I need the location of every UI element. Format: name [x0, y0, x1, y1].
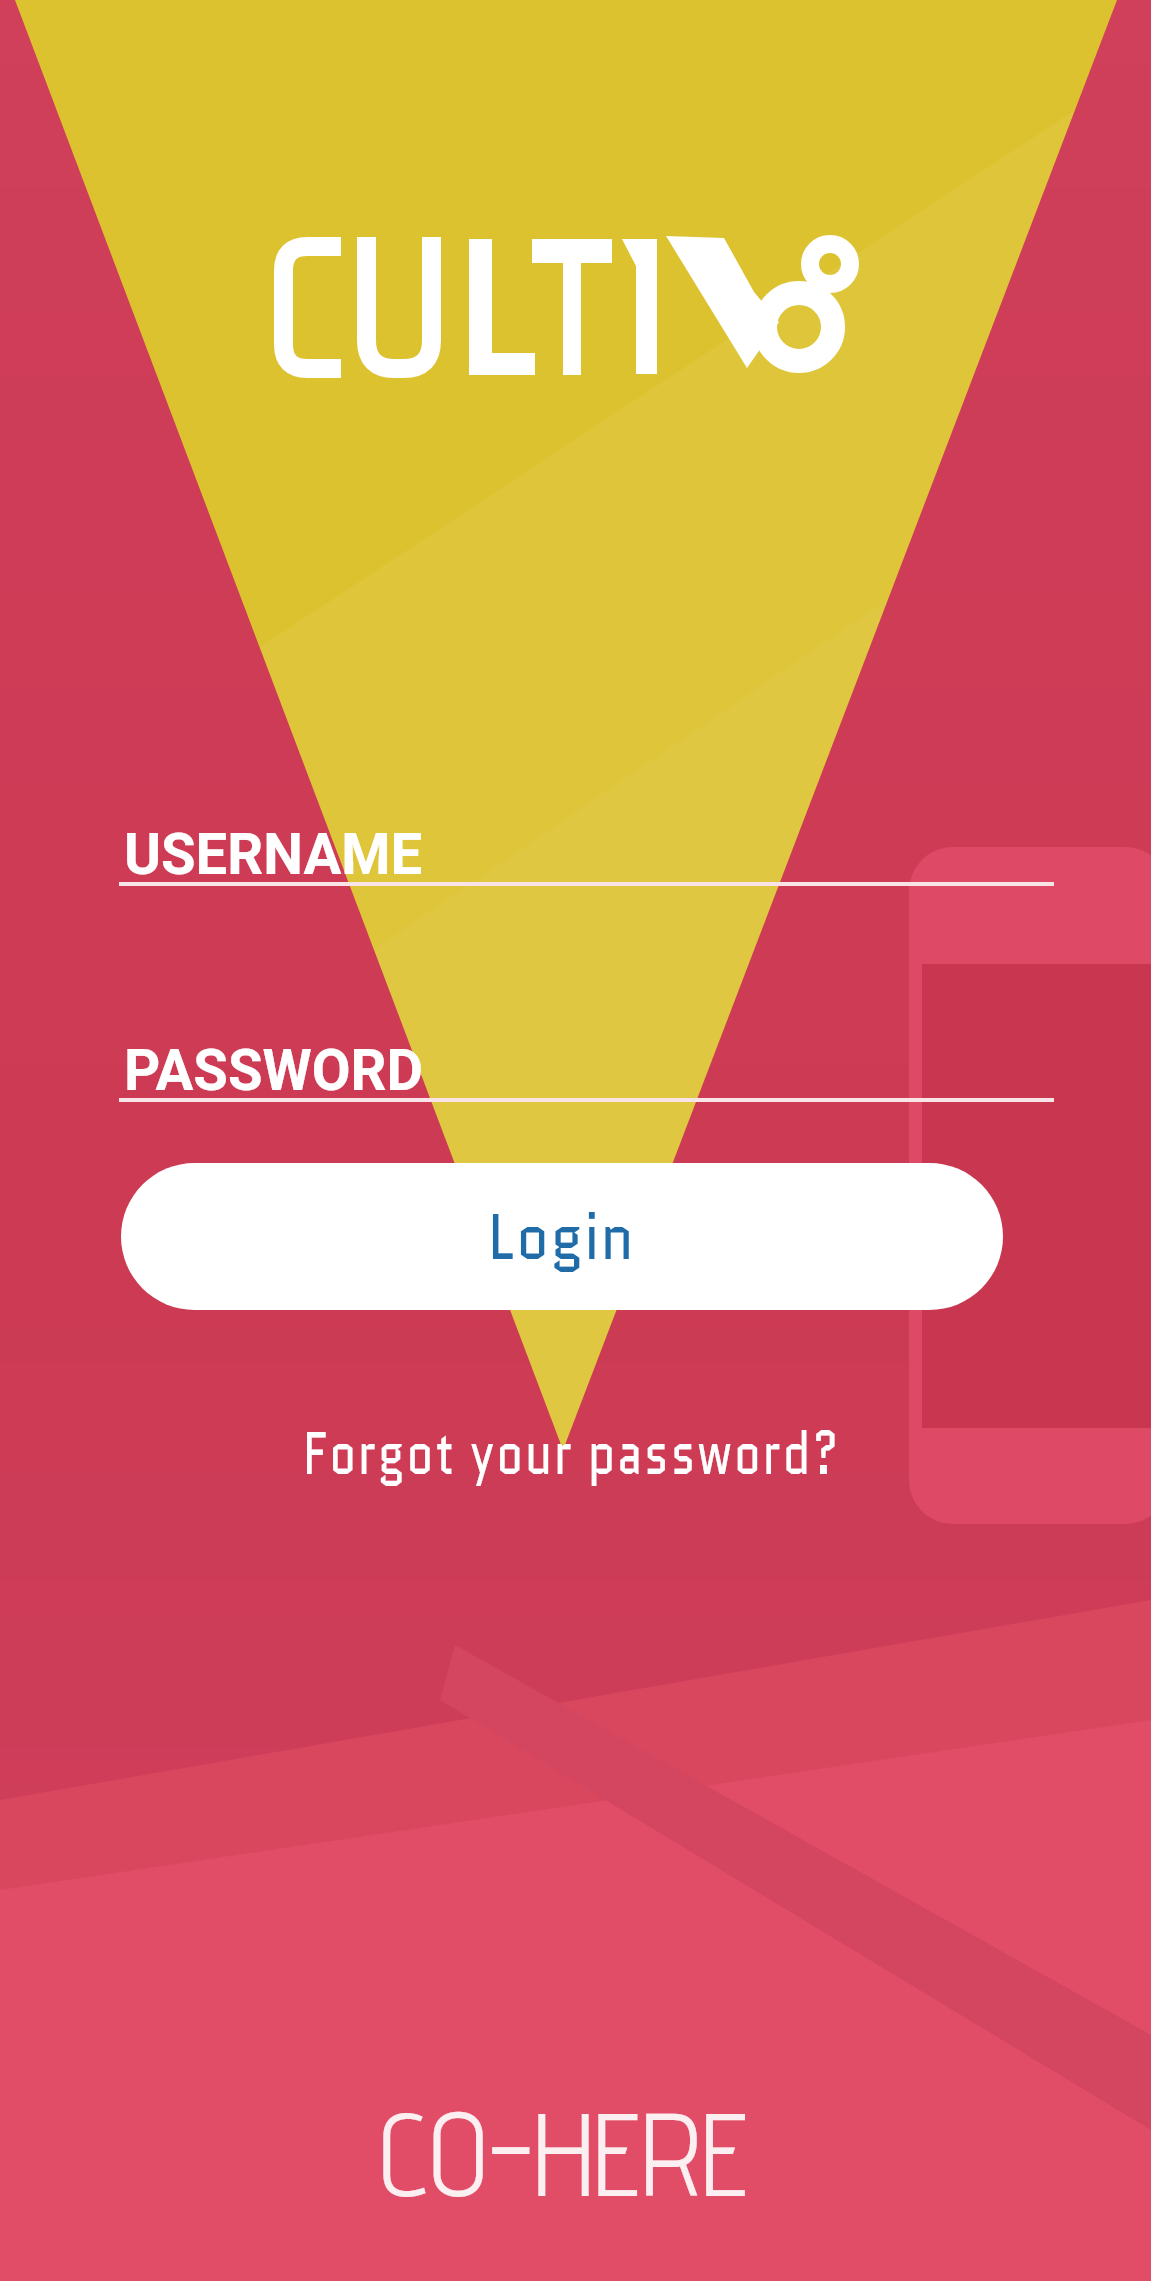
button[interactable]: Login	[121, 1163, 1003, 1310]
staticText: Forgot your password?	[303, 1411, 841, 1495]
staticText: USERNAME	[124, 820, 423, 888]
staticText: Login	[488, 1191, 636, 1283]
staticText: PASSWORD	[124, 1036, 424, 1104]
staticText: CO-HERE	[379, 2084, 749, 2223]
button[interactable]: Forgot your password?	[0, 1398, 1147, 1508]
